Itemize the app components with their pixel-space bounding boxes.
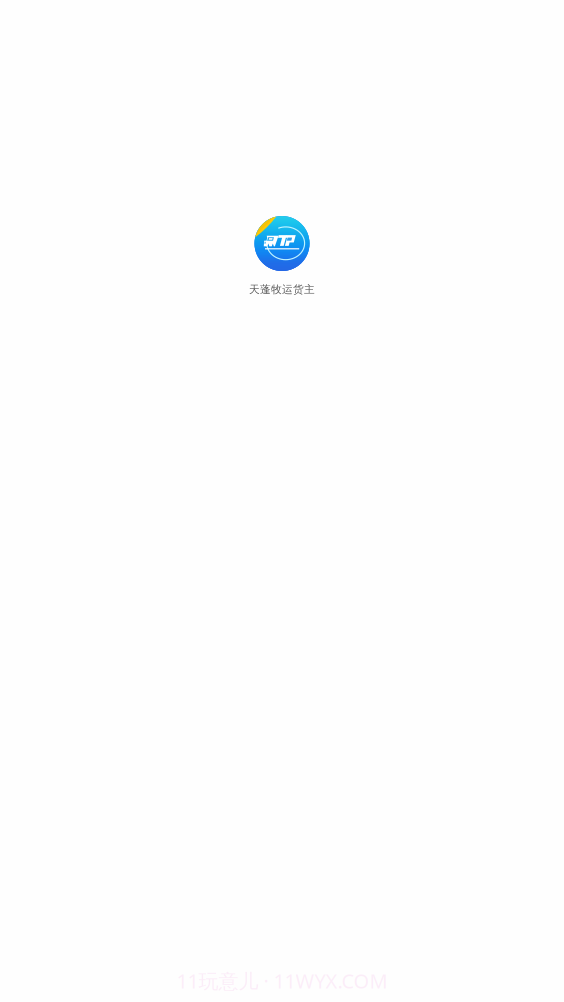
staticText: 11玩意儿 · 11WYX.COM [176, 967, 387, 994]
staticText: 天蓬牧运货主 [249, 283, 315, 296]
